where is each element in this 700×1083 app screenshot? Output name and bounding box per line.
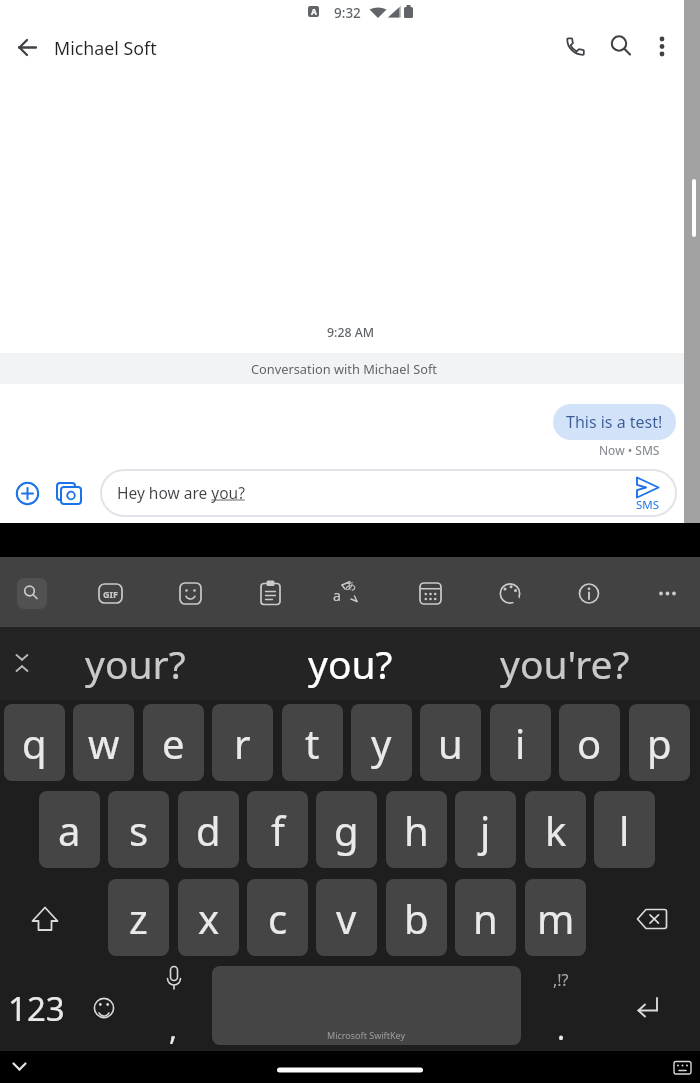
staticText: y (371, 716, 392, 770)
button[interactable]: ,!? (545, 968, 577, 992)
button[interactable] (628, 894, 678, 944)
button[interactable] (6, 645, 40, 679)
button[interactable]: your? (40, 630, 230, 696)
button[interactable]: , (160, 1008, 186, 1044)
button[interactable]: you're? (470, 630, 660, 696)
staticText: p (647, 716, 672, 770)
button[interactable]: This is a test! (553, 404, 676, 440)
button[interactable]: y (351, 704, 412, 781)
button[interactable]: c (247, 879, 308, 956)
button[interactable]: o (559, 704, 620, 781)
button[interactable]: j (455, 791, 516, 868)
button[interactable]: 123 (4, 986, 68, 1030)
staticText: you? (308, 637, 393, 690)
button[interactable] (52, 478, 86, 510)
staticText: d (196, 803, 221, 857)
staticText: s (129, 803, 149, 857)
staticText: i (515, 716, 526, 770)
button[interactable]: u (420, 704, 481, 781)
staticText: Michael Soft (54, 36, 157, 60)
staticText: m (537, 891, 575, 945)
button[interactable]: d (178, 791, 239, 868)
button[interactable]: k (525, 791, 586, 868)
staticText: b (404, 891, 429, 945)
button[interactable] (249, 580, 293, 606)
button[interactable] (628, 472, 668, 502)
button[interactable]: i (490, 704, 551, 781)
staticText: j (480, 803, 491, 857)
button[interactable] (12, 478, 44, 510)
button[interactable] (328, 580, 372, 606)
staticText: Microsoft SwiftKey (327, 1029, 405, 1041)
button[interactable] (20, 894, 70, 944)
button[interactable] (80, 984, 128, 1032)
button[interactable] (488, 580, 532, 606)
button[interactable] (558, 29, 592, 63)
staticText: Hey how are you? (117, 482, 245, 503)
button[interactable]: z (108, 879, 169, 956)
staticText: k (545, 803, 567, 857)
button[interactable]: v (316, 879, 377, 956)
staticText: you're? (500, 637, 630, 690)
button[interactable]: Hey how are you? (117, 469, 417, 516)
staticText: your? (85, 637, 186, 690)
button[interactable]: t (282, 704, 343, 781)
button[interactable]: m (525, 879, 586, 956)
staticText: e (162, 716, 185, 770)
staticText: a (333, 586, 341, 604)
button[interactable] (17, 578, 47, 609)
staticText: c (268, 891, 288, 945)
button[interactable]: w (73, 704, 134, 781)
button[interactable]: . (548, 1008, 574, 1044)
staticText: r (234, 716, 251, 770)
button[interactable]: you? (260, 630, 440, 696)
staticText: , (169, 1008, 178, 1044)
button[interactable]: f (247, 791, 308, 868)
button[interactable]: n (455, 879, 516, 956)
button[interactable]: s (108, 791, 169, 868)
button[interactable] (2, 1053, 38, 1083)
button[interactable] (100, 469, 677, 517)
staticText: GIF (103, 588, 118, 600)
button[interactable] (212, 966, 521, 1045)
staticText: a (58, 803, 81, 857)
staticText: 123 (8, 986, 65, 1030)
button[interactable]: x (178, 879, 239, 956)
button[interactable]: GIF (99, 584, 122, 603)
button[interactable] (624, 984, 672, 1030)
button[interactable] (646, 580, 690, 606)
button[interactable]: l (594, 791, 655, 868)
button[interactable]: g (316, 791, 377, 868)
button[interactable] (602, 29, 636, 63)
staticText: . (557, 1008, 566, 1044)
staticText: w (88, 716, 120, 770)
staticText: SMS (636, 497, 660, 511)
button[interactable]: h (386, 791, 447, 868)
button[interactable]: a (39, 791, 100, 868)
staticText: x (198, 891, 220, 945)
staticText: h (404, 803, 429, 857)
staticText: z (129, 891, 148, 945)
button[interactable]: r (212, 704, 273, 781)
staticText: l (619, 803, 630, 857)
staticText: v (336, 891, 357, 945)
staticText: g (334, 803, 359, 857)
button[interactable]: b (386, 879, 447, 956)
staticText: n (473, 891, 498, 945)
button[interactable] (645, 29, 679, 63)
button[interactable]: p (629, 704, 690, 781)
button[interactable]: q (4, 704, 65, 781)
button[interactable] (168, 580, 212, 606)
button[interactable] (17, 578, 47, 609)
button[interactable]: e (143, 704, 204, 781)
button[interactable] (10, 30, 44, 64)
button[interactable] (408, 580, 452, 606)
button[interactable] (150, 958, 198, 998)
staticText: Conversation with Michael Soft (251, 360, 437, 377)
button[interactable]: SMS (630, 497, 666, 511)
button[interactable] (664, 1053, 700, 1083)
staticText: q (22, 716, 47, 770)
staticText: 9:32 (334, 4, 361, 22)
staticText: o (577, 716, 602, 770)
button[interactable] (567, 580, 611, 606)
